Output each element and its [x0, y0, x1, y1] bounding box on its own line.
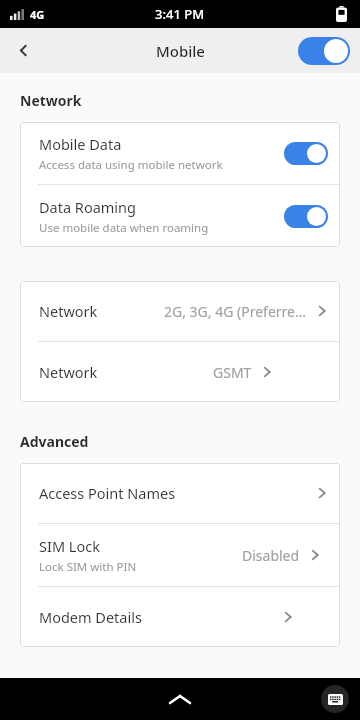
staticText: GSMT [213, 363, 252, 382]
button[interactable]: Back [0, 28, 46, 73]
staticText: SIM Lock [39, 536, 100, 556]
staticText: Data Roaming [39, 197, 136, 217]
button[interactable]: Back [157, 678, 203, 720]
button[interactable]: Network [20, 342, 340, 402]
button[interactable]: Mobile toggle [298, 37, 350, 65]
staticText: Use mobile data when roaming [39, 220, 209, 236]
staticText: Advanced [20, 432, 89, 451]
button[interactable]: Keyboard [321, 685, 349, 713]
button[interactable]: Access Point Names [20, 463, 340, 523]
staticText: Disabled [242, 546, 300, 565]
staticText: 4G [30, 7, 45, 22]
button[interactable]: Network Mode [20, 281, 340, 341]
button[interactable]: Mobile Data [20, 122, 340, 184]
staticText: Mobile [156, 41, 205, 61]
staticText: Modem Details [39, 607, 142, 627]
button[interactable]: SIM Lock [20, 524, 340, 586]
staticText: Network Mode [39, 301, 101, 321]
staticText: 2G, 3G, 4G (Preferre… [164, 302, 307, 321]
button[interactable]: Data Roaming [20, 185, 340, 247]
staticText: Lock SIM with PIN [39, 559, 137, 575]
staticText: Network [39, 362, 98, 382]
button[interactable]: Modem Details [20, 587, 340, 647]
staticText: Mobile Data [39, 134, 122, 154]
staticText: Network [20, 91, 82, 110]
staticText: Access data using mobile network [39, 157, 223, 173]
staticText: 3:41 PM [155, 5, 205, 23]
staticText: Access Point Names [39, 483, 176, 503]
